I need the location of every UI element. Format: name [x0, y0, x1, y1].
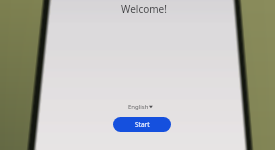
staticText: Welcome! [118, 2, 170, 16]
staticText: Start [135, 120, 150, 129]
staticText: English [128, 103, 149, 111]
other: Choose language [149, 103, 155, 111]
button[interactable]: Start [113, 117, 171, 132]
button[interactable]: English [126, 101, 158, 112]
